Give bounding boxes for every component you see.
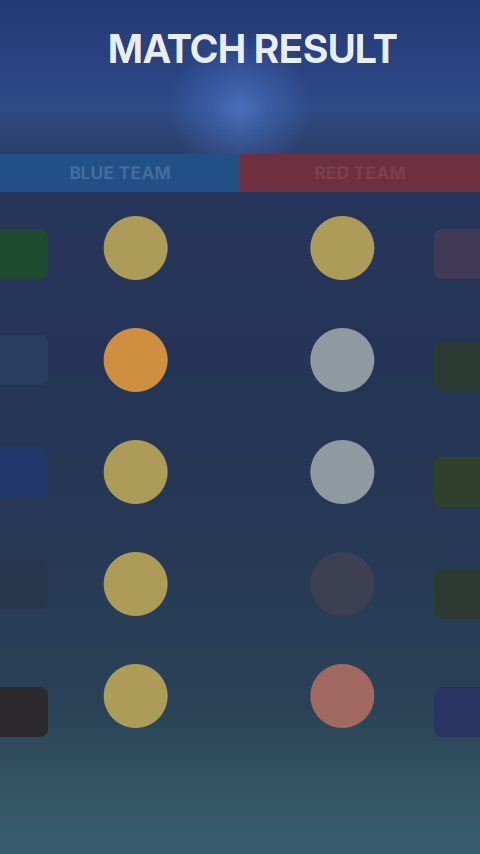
staticText: MATCH RESULT <box>108 26 398 72</box>
button[interactable]: RED TEAM <box>240 154 480 192</box>
button[interactable]: BLUE TEAM <box>0 154 240 192</box>
staticText: BLUE TEAM <box>69 162 170 183</box>
staticText: RED TEAM <box>314 162 405 183</box>
